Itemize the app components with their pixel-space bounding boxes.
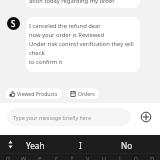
button[interactable]: I canceled the refund dear now your orde… (26, 17, 140, 72)
staticText: r (55, 154, 58, 160)
staticText: Yeah (26, 140, 45, 151)
button[interactable]: Viewed Products (6, 88, 62, 99)
button[interactable]: No (109, 136, 145, 154)
button[interactable]: w (16, 154, 32, 160)
button[interactable]: p (144, 154, 160, 160)
button[interactable]: r (48, 154, 64, 160)
staticText: Type your message briefly here (13, 114, 91, 121)
button[interactable]: q (0, 154, 16, 160)
staticText: o (134, 154, 138, 160)
button[interactable]: y (80, 154, 96, 160)
button[interactable]: i (112, 154, 128, 160)
button[interactable]: o (128, 154, 144, 160)
button[interactable]: ation today regarding my order (26, 0, 140, 8)
button[interactable]: Yeah (17, 136, 53, 154)
staticText: q (6, 154, 10, 160)
staticText: i (119, 154, 121, 160)
button[interactable]: Type your message briefly here (7, 108, 131, 126)
button[interactable]: Seller avatar (7, 17, 20, 30)
button[interactable]: Expand suggestions (2, 135, 18, 154)
staticText: y (86, 154, 90, 160)
staticText: S (11, 18, 16, 29)
staticText: Orders (78, 90, 95, 97)
staticText: Viewed Products (17, 90, 58, 97)
button[interactable]: u (96, 154, 112, 160)
staticText: I canceled the refund dear now your orde… (29, 21, 134, 66)
button[interactable]: e (32, 154, 48, 160)
button[interactable]: Add attachment (139, 110, 153, 124)
button[interactable]: Orders (67, 88, 99, 99)
staticText: e (38, 154, 42, 160)
staticText: t (71, 154, 74, 160)
staticText: I (79, 140, 82, 151)
staticText: p (150, 154, 154, 160)
button[interactable]: I (62, 136, 98, 154)
button[interactable]: t (64, 154, 80, 160)
staticText: No (121, 140, 133, 151)
staticText: w (21, 154, 27, 160)
staticText: u (102, 154, 107, 160)
staticText: ation today regarding my order (29, 0, 115, 5)
